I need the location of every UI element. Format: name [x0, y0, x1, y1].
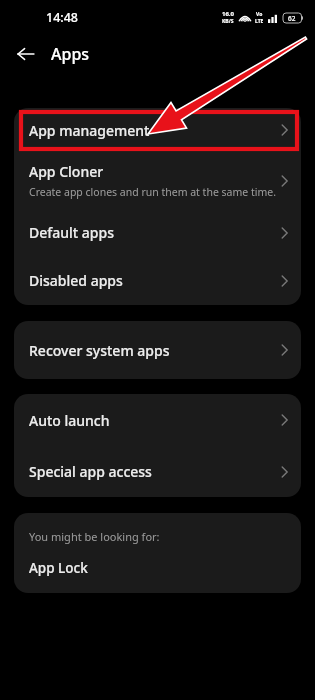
staticText: Create app clones and run them at the sa…: [29, 185, 276, 199]
button[interactable]: App Cloner: [14, 152, 301, 209]
button[interactable]: Auto launch: [14, 394, 301, 446]
button[interactable]: App Lock: [29, 559, 289, 577]
staticText: LTE: [255, 18, 264, 25]
button[interactable]: Disabled apps: [14, 256, 301, 305]
staticText: KB/S: [222, 18, 234, 25]
staticText: Default apps: [29, 223, 115, 242]
staticText: Recover system apps: [29, 341, 170, 360]
staticText: You might be looking for:: [29, 529, 160, 544]
staticText: Apps: [51, 43, 90, 65]
staticText: App Lock: [29, 559, 88, 577]
button[interactable]: App management: [14, 108, 301, 152]
staticText: Auto launch: [29, 411, 110, 430]
button[interactable]: Special app access: [14, 446, 301, 497]
staticText: Vo: [256, 11, 263, 18]
staticText: App management: [29, 121, 150, 140]
staticText: Disabled apps: [29, 271, 123, 290]
staticText: 16.0: [222, 10, 234, 18]
staticText: 14:48: [46, 9, 79, 26]
staticText: Special app access: [29, 462, 152, 481]
staticText: 62: [288, 14, 296, 23]
button[interactable]: Default apps: [14, 209, 301, 256]
button[interactable]: Back: [8, 36, 44, 72]
staticText: App Cloner: [29, 162, 104, 181]
button[interactable]: Recover system apps: [14, 321, 301, 379]
